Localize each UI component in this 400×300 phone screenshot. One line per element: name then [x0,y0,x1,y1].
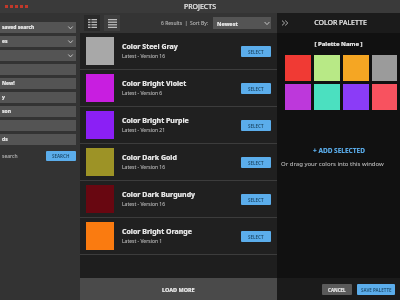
staticText: CANCEL [328,287,346,293]
staticText: saved search [2,24,67,31]
button[interactable]: SAVE PALETTE [357,284,395,295]
button[interactable]: List view [104,15,120,31]
staticText: 6 Results | Sort By: [161,20,209,27]
staticText: ds [2,136,8,143]
staticText: SELECT [248,234,264,240]
staticText: Latest - Version 21 [122,127,166,134]
staticText: Latest - Version 16 [122,201,166,208]
staticText: SELECT [248,160,264,166]
button[interactable]: Color Dark Gold [80,144,277,180]
staticText: Color Bright Purple [122,116,189,126]
button[interactable]: Newest [213,17,271,29]
button[interactable]: Color Bright Violet [80,70,277,106]
staticText: SELECT [248,86,264,92]
staticText: search [2,153,46,160]
button[interactable]: SEARCH [46,151,76,161]
button[interactable]: Color Steel Gray [80,33,277,69]
button[interactable]: SELECT [241,231,271,242]
button[interactable]: + ADD SELECTED [277,146,400,155]
button[interactable]: SELECT [241,194,271,205]
button[interactable]: y [0,92,76,103]
button[interactable]: ds [0,134,76,145]
staticText: Latest - Version 1 [122,238,163,245]
staticText: Latest - Version 6 [122,90,163,97]
staticText: Newest [217,20,263,27]
staticText: SELECT [248,123,264,129]
button[interactable]: Color Bright Purple [80,107,277,143]
button[interactable]: son [0,106,76,117]
staticText: + ADD SELECTED [313,146,365,155]
button[interactable]: Color Dark Burgundy [80,181,277,217]
staticText: Color Dark Gold [122,153,177,163]
button[interactable]: Collapse panel [277,15,293,31]
staticText: SEARCH [52,153,70,159]
staticText: PROJECTS [184,2,217,12]
button[interactable]: LOAD MORE [80,278,277,300]
staticText: Latest - Version 16 [122,53,166,60]
staticText: Color Dark Burgundy [122,190,196,200]
staticText: New! [2,80,15,87]
button[interactable]: CANCEL [322,284,352,295]
button[interactable]: SELECT [241,46,271,57]
staticText: son [2,108,11,115]
staticText: SELECT [248,49,264,55]
staticText: Color Bright Orange [122,227,192,237]
staticText: es [2,38,67,45]
button[interactable]: SELECT [241,120,271,131]
staticText: LOAD MORE [162,286,195,293]
staticText: Color Bright Violet [122,79,187,89]
button[interactable]: Grid view [84,15,100,31]
staticText: COLOR PALETTE [293,18,388,28]
staticText: SELECT [248,197,264,203]
staticText: y [2,94,5,101]
button[interactable] [0,50,76,61]
staticText: Color Steel Gray [122,42,178,52]
staticText: Or drag your colors into this window [281,160,400,168]
button[interactable]: SELECT [241,83,271,94]
staticText: [ Palette Name ] [277,40,400,48]
button[interactable]: saved search [0,22,76,33]
button[interactable]: Color Bright Orange [80,218,277,254]
button[interactable]: es [0,36,76,47]
button[interactable]: New! [0,78,76,89]
staticText: Latest - Version 16 [122,164,166,171]
staticText: SAVE PALETTE [361,287,392,293]
button[interactable]: SELECT [241,157,271,168]
